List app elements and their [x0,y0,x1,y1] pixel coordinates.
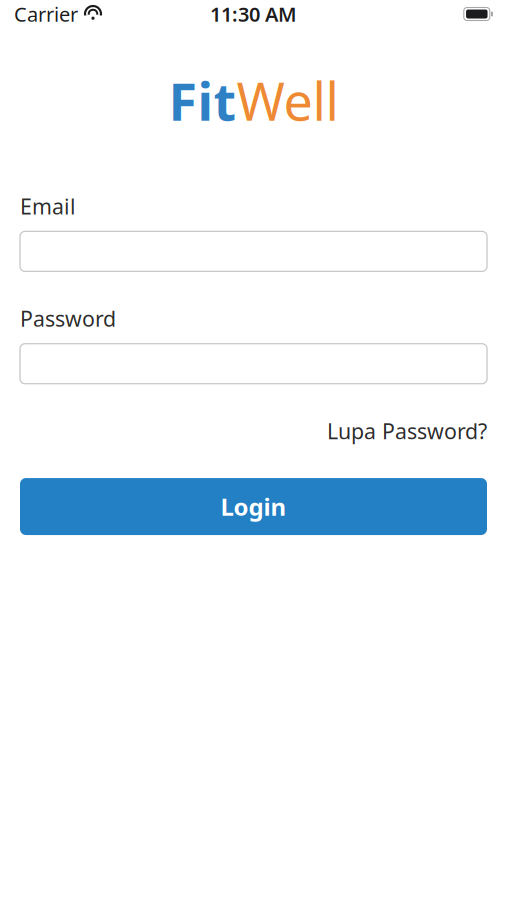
staticText: Login [220,491,286,522]
staticText: 11:30 AM [210,1,297,27]
staticText: Lupa Password? [327,417,487,445]
staticText: Well [236,66,338,135]
button[interactable]: Login [20,478,487,535]
button[interactable]: Lupa Password? [327,417,487,445]
staticText: Fit [168,66,236,135]
staticText: Password [20,304,116,333]
staticText: Email [20,192,76,220]
staticText: Carrier [14,1,78,27]
